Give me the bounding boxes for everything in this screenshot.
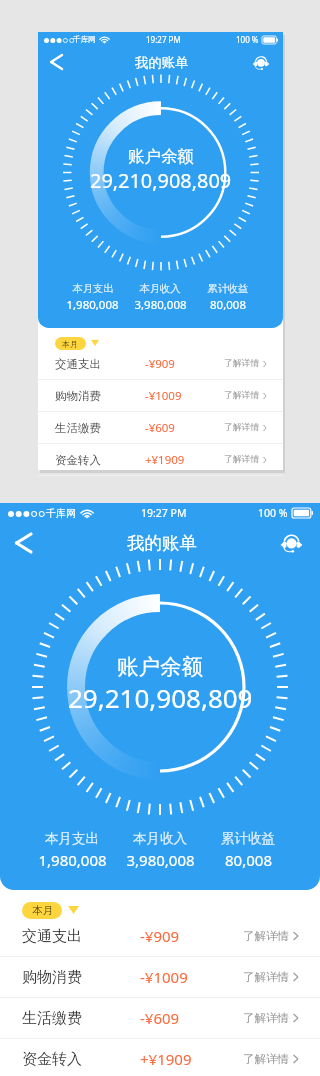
staticText: 交通支出 [22, 927, 82, 946]
staticText: -¥609 [145, 420, 175, 436]
button[interactable]: 本月 [55, 337, 86, 350]
staticText: 购物消费 [22, 968, 82, 987]
staticText: 账户余额 [128, 146, 194, 167]
staticText: 我的账单 [127, 532, 197, 554]
staticText: 80,008 [210, 297, 246, 313]
button[interactable]: 资金转入 [38, 444, 283, 476]
staticText: -¥1009 [145, 388, 182, 404]
staticText: 千库网 [73, 35, 96, 45]
staticText: 购物消费 [55, 389, 101, 403]
button[interactable]: 交通支出 [38, 348, 283, 380]
staticText: 本月 [62, 339, 79, 349]
staticText: 1,980,008 [38, 850, 107, 870]
staticText: 3,980,008 [126, 850, 195, 870]
staticText: 100 % [258, 506, 288, 520]
staticText: 了解详情 [224, 422, 260, 433]
staticText: 29,210,908,809 [68, 680, 253, 715]
button[interactable]: 生活缴费 [38, 412, 283, 444]
staticText: 资金转入 [55, 453, 101, 467]
staticText: 生活缴费 [55, 421, 101, 435]
staticText: 了解详情 [243, 1052, 289, 1066]
staticText: 了解详情 [243, 929, 289, 943]
staticText: 本月支出 [72, 282, 114, 295]
staticText: 我的账单 [135, 54, 189, 71]
staticText: -¥909 [140, 926, 180, 946]
staticText: 账户余额 [117, 653, 203, 680]
staticText: -¥1009 [140, 967, 188, 987]
staticText: 了解详情 [224, 454, 260, 465]
staticText: 本月收入 [139, 282, 181, 295]
button[interactable]: 资金转入 [0, 1039, 320, 1076]
staticText: 19:27 PM [146, 34, 181, 45]
staticText: -¥909 [145, 356, 175, 372]
staticText: -¥609 [140, 1008, 180, 1028]
staticText: 了解详情 [224, 390, 260, 401]
staticText: 了解详情 [224, 358, 260, 369]
staticText: 本月支出 [45, 830, 99, 847]
staticText: 了解详情 [243, 970, 289, 984]
staticText: 累计收益 [221, 830, 275, 847]
staticText: 3,980,008 [134, 297, 187, 313]
staticText: 交通支出 [55, 357, 101, 371]
staticText: 了解详情 [243, 1011, 289, 1025]
button[interactable]: 交通支出 [0, 916, 320, 957]
staticText: 本月 [32, 904, 53, 917]
button[interactable]: Back [42, 48, 70, 76]
staticText: 资金转入 [22, 1050, 82, 1069]
staticText: 累计收益 [207, 282, 249, 295]
staticText: 生活缴费 [22, 1009, 82, 1028]
staticText: +¥1909 [140, 1049, 192, 1069]
button[interactable]: 本月 [22, 902, 62, 919]
button[interactable]: Customer service [249, 51, 272, 74]
staticText: 19:27 PM [141, 506, 187, 520]
staticText: 100 % [236, 34, 259, 45]
staticText: +¥1909 [145, 452, 185, 468]
staticText: 80,008 [225, 850, 272, 870]
button[interactable]: 购物消费 [38, 380, 283, 412]
button[interactable]: 购物消费 [0, 957, 320, 998]
staticText: 千库网 [46, 507, 76, 520]
button[interactable]: Back [5, 525, 41, 561]
button[interactable]: 生活缴费 [0, 998, 320, 1039]
staticText: 本月收入 [133, 830, 187, 847]
button[interactable]: Customer service [276, 528, 306, 558]
staticText: 1,980,008 [66, 297, 119, 313]
staticText: 29,210,908,809 [90, 167, 232, 194]
